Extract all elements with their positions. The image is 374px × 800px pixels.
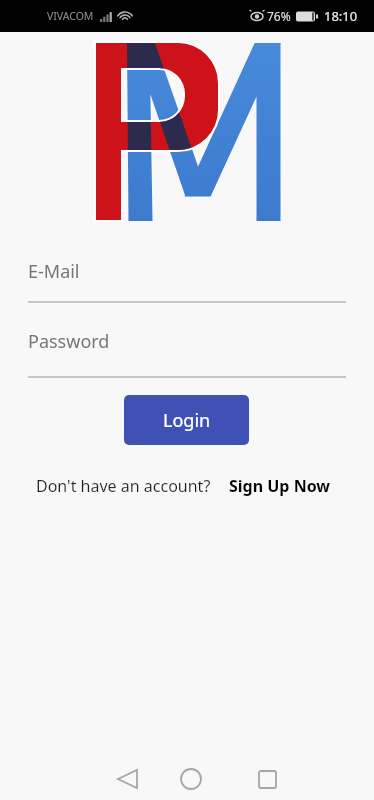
- staticText: Login: [163, 408, 211, 433]
- staticText: VIVACOM: [47, 9, 94, 23]
- button[interactable]: [247, 762, 287, 796]
- staticText: Password: [28, 329, 110, 354]
- button[interactable]: E-Mail: [28, 255, 346, 303]
- staticText: E-Mail: [28, 259, 80, 284]
- button[interactable]: [171, 762, 211, 796]
- staticText: 76%: [267, 8, 291, 24]
- button[interactable]: Password: [28, 325, 346, 378]
- button[interactable]: [108, 762, 148, 796]
- button[interactable]: Login: [124, 395, 249, 445]
- button[interactable]: Sign Up Now: [229, 475, 331, 497]
- staticText: 18:10: [324, 7, 358, 25]
- staticText: Don't have an account?: [36, 475, 211, 497]
